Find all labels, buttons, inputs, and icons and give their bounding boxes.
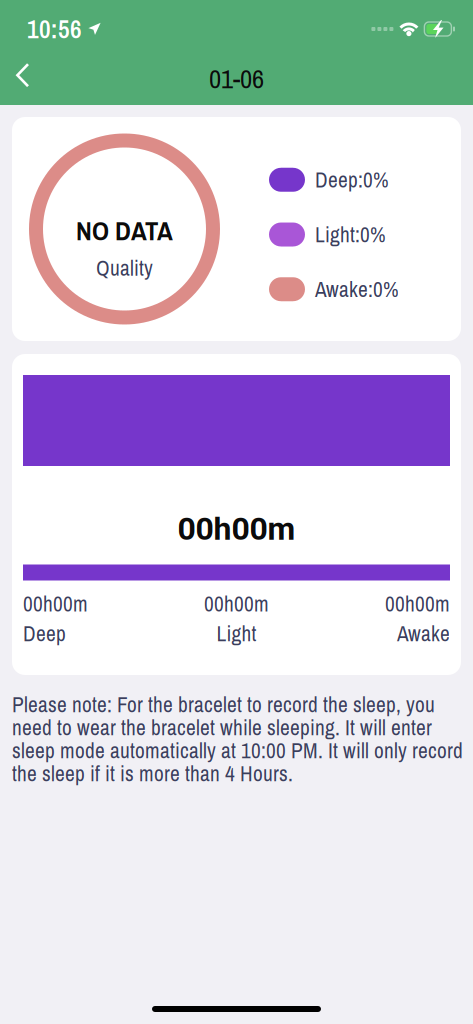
staticText: 10:56 bbox=[27, 12, 82, 46]
staticText: Please note: For the bracelet to record … bbox=[12, 693, 463, 785]
staticText: Light:0% bbox=[315, 220, 386, 249]
staticText: Light bbox=[216, 619, 256, 648]
staticText: 00h00m bbox=[177, 510, 295, 547]
staticText: NO DATA bbox=[76, 213, 173, 249]
staticText: Quality bbox=[96, 254, 153, 282]
staticText: Awake bbox=[397, 619, 450, 648]
button[interactable]: Back bbox=[0, 52, 46, 98]
staticText: Deep bbox=[23, 619, 66, 648]
staticText: 00h00m bbox=[385, 589, 450, 618]
staticText: 00h00m bbox=[204, 589, 269, 618]
staticText: 00h00m bbox=[23, 589, 88, 618]
staticText: Deep:0% bbox=[315, 165, 389, 194]
staticText: 01-06 bbox=[209, 60, 264, 96]
staticText: Awake:0% bbox=[315, 275, 399, 304]
